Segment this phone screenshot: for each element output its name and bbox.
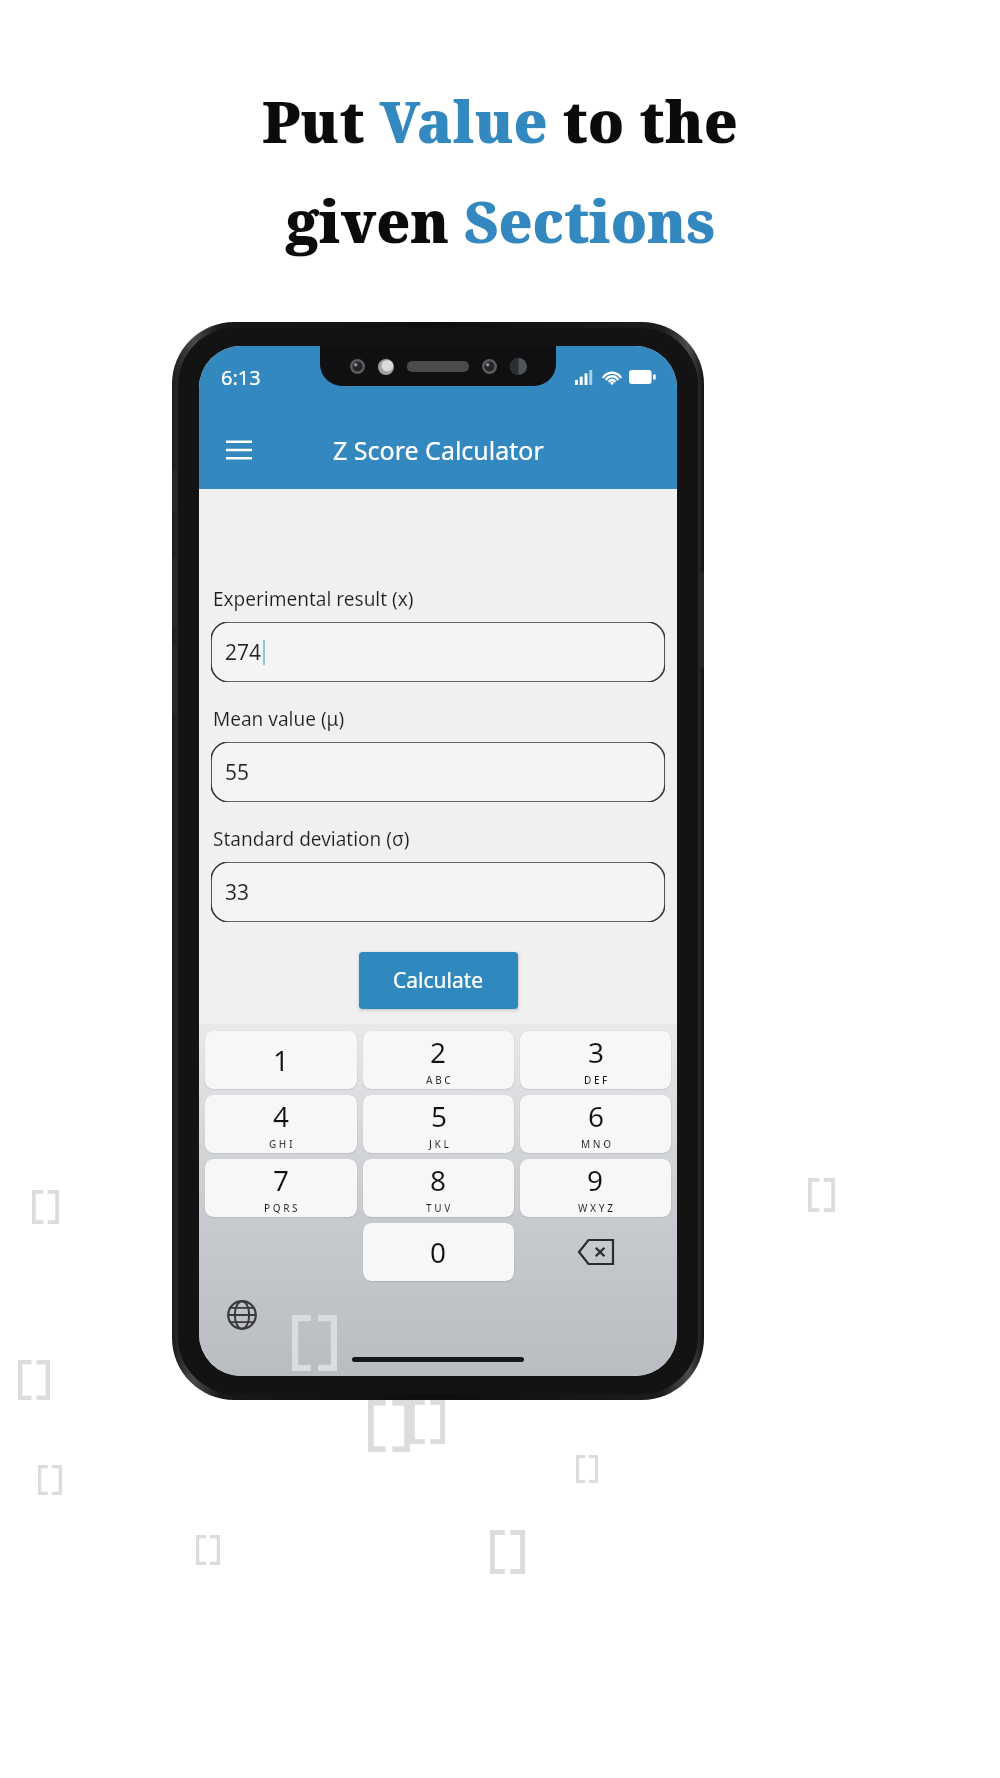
staticText: A B C	[426, 1073, 451, 1087]
button[interactable]: 2	[363, 1031, 514, 1089]
button[interactable]: Backspace	[520, 1223, 671, 1281]
staticText: J K L	[429, 1137, 449, 1151]
staticText: 8	[430, 1161, 447, 1199]
staticText: P Q R S	[264, 1201, 298, 1215]
staticText: 3	[588, 1033, 605, 1071]
button[interactable]: 55	[211, 742, 665, 802]
button[interactable]: 7	[205, 1159, 357, 1217]
button[interactable]: 4	[205, 1095, 357, 1153]
staticText: 2	[430, 1033, 447, 1071]
button[interactable]: 0	[363, 1223, 514, 1281]
button[interactable]: 9	[520, 1159, 671, 1217]
button[interactable]: Change keyboard language	[220, 1293, 264, 1337]
staticText: 7	[273, 1161, 290, 1199]
staticText: 5	[431, 1097, 448, 1135]
staticText: D E F	[584, 1073, 608, 1087]
staticText: W X Y Z	[578, 1201, 613, 1215]
button[interactable]: 33	[211, 862, 665, 922]
staticText: 4	[273, 1097, 290, 1135]
staticText: Standard deviation (σ)	[213, 826, 410, 852]
button[interactable]: 274	[211, 622, 665, 682]
staticText: 9	[587, 1161, 604, 1199]
button[interactable]: 5	[363, 1095, 514, 1153]
button[interactable]: Open navigation menu	[217, 428, 261, 472]
staticText: G H I	[269, 1137, 293, 1151]
staticText: given Sections	[286, 182, 715, 260]
staticText: 1	[273, 1041, 290, 1079]
staticText: T U V	[426, 1201, 451, 1215]
staticText: 33	[225, 878, 250, 907]
button[interactable]: 1	[205, 1031, 357, 1089]
button[interactable]: 8	[363, 1159, 514, 1217]
staticText: 274	[225, 638, 262, 667]
staticText: 0	[430, 1233, 447, 1271]
staticText: Calculate	[393, 966, 484, 995]
staticText: 6:13	[221, 364, 261, 391]
staticText: M N O	[581, 1137, 611, 1151]
staticText: Experimental result (x)	[213, 586, 414, 612]
button[interactable]: 3	[520, 1031, 671, 1089]
button[interactable]: Calculate	[359, 952, 518, 1009]
button[interactable]: 6	[520, 1095, 671, 1153]
staticText: Put Value to the	[262, 82, 738, 160]
staticText: 6	[588, 1097, 605, 1135]
staticText: 55	[225, 758, 250, 787]
staticText: Z Score Calculator	[333, 433, 544, 467]
staticText: Mean value (μ)	[213, 706, 345, 732]
